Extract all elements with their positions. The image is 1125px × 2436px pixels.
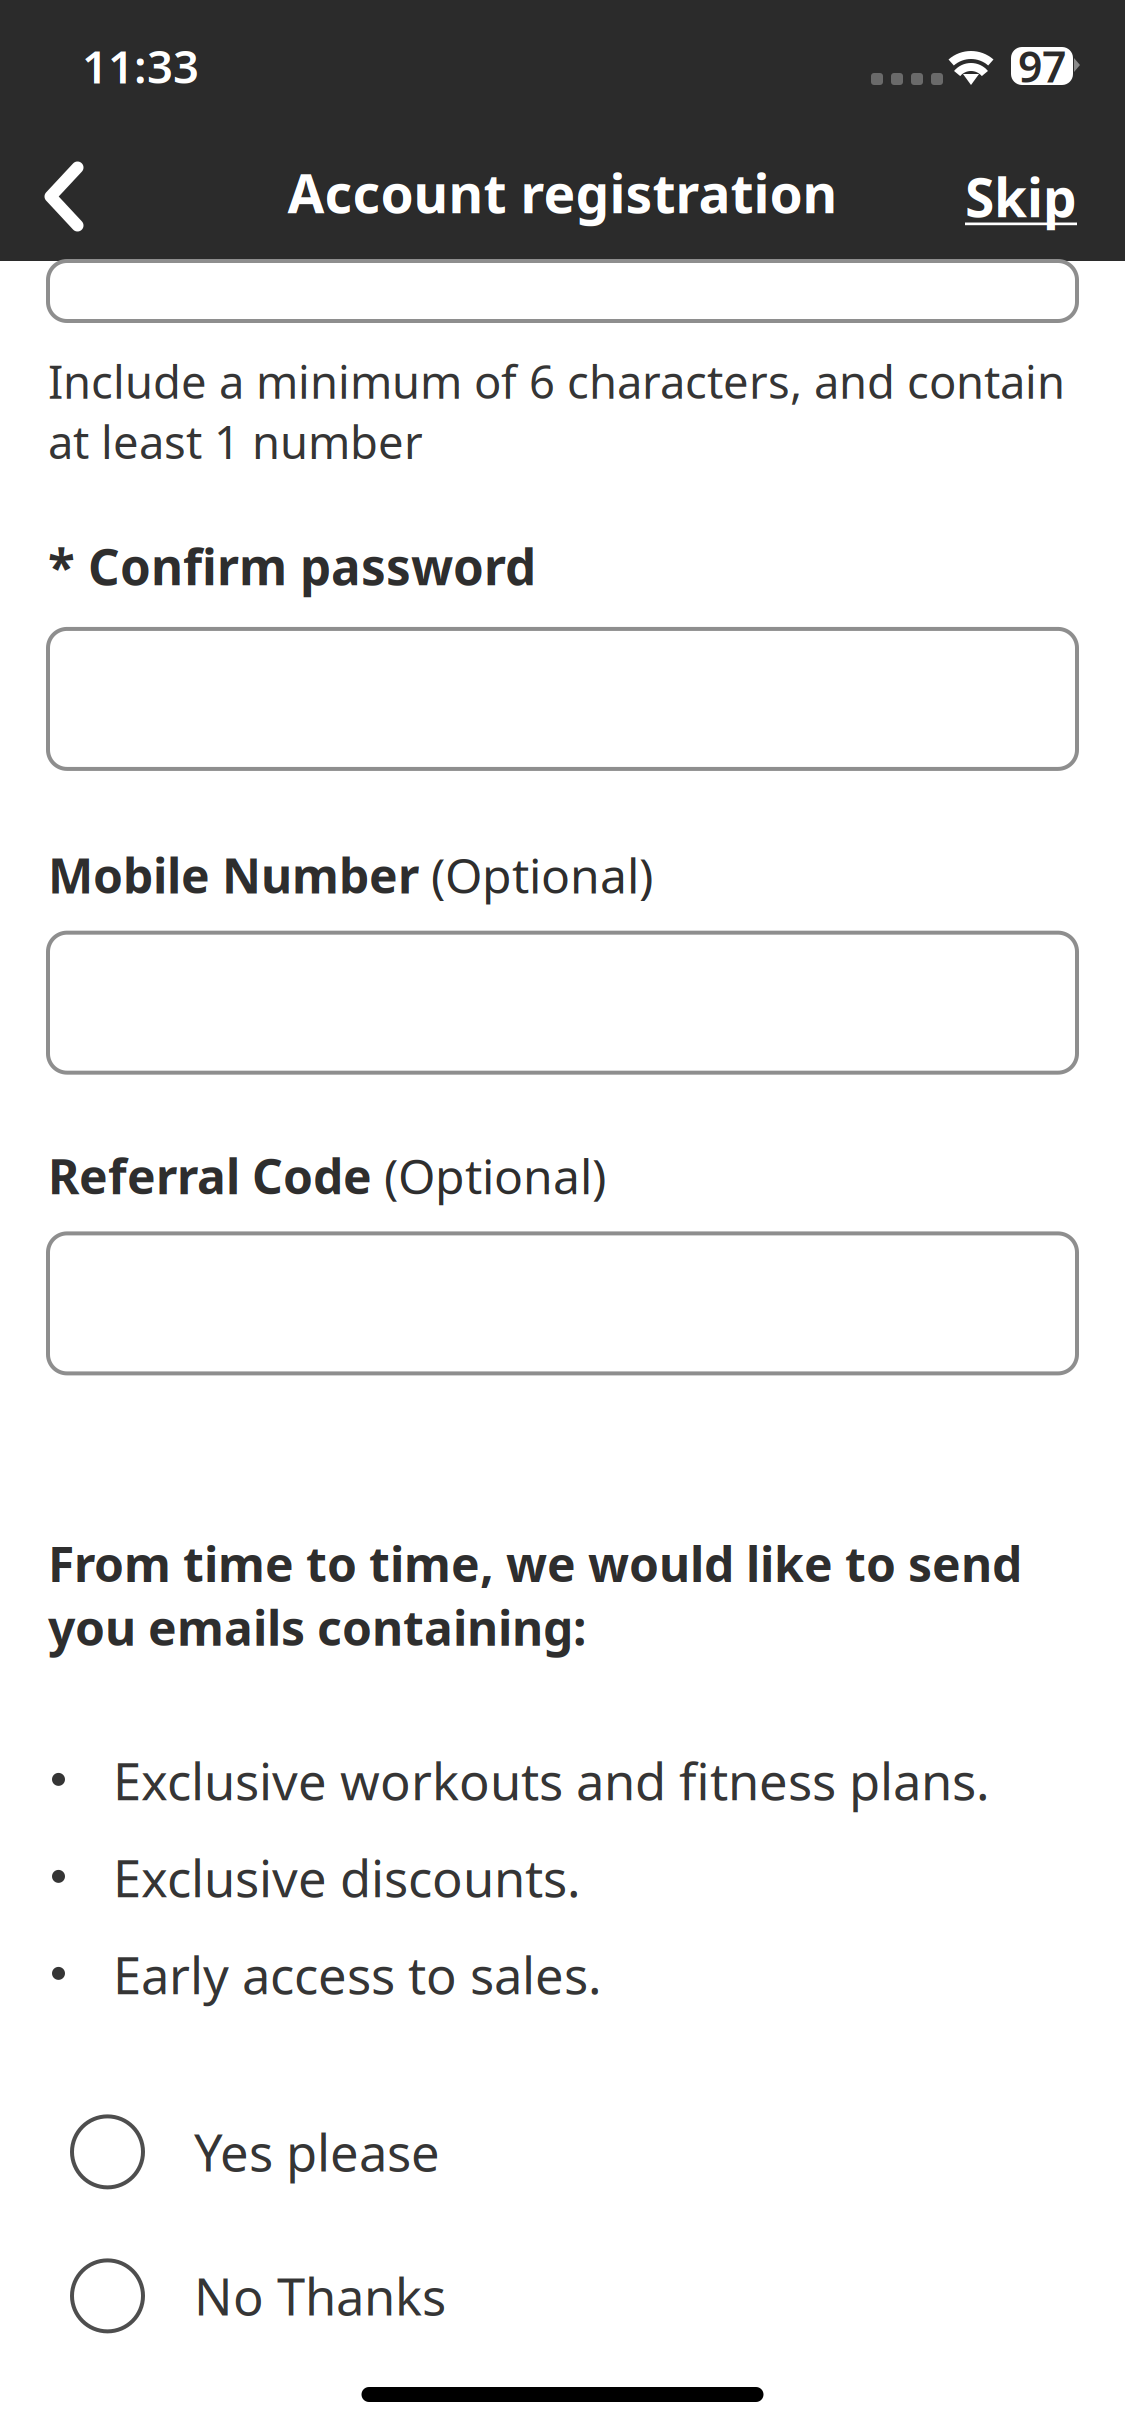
staticText: From time to time, we would like to send… xyxy=(48,1531,1022,1659)
button[interactable]: Confirm password xyxy=(0,629,1125,769)
staticText: No Thanks xyxy=(194,2262,446,2329)
button[interactable]: Mobile Number xyxy=(0,933,1125,1073)
staticText: Include a minimum of 6 characters, and c… xyxy=(48,351,1065,471)
button[interactable]: Yes please xyxy=(0,2080,1125,2224)
staticText: Exclusive discounts. xyxy=(113,1844,581,1911)
staticText: Referral Code xyxy=(48,1144,372,1207)
button[interactable]: Back xyxy=(6,132,102,261)
staticText: * Confirm password xyxy=(48,533,536,599)
staticText: 97 xyxy=(1018,38,1066,94)
staticText: (Optional) xyxy=(372,1144,606,1207)
button[interactable]: Referral Code xyxy=(0,1233,1125,1373)
staticText: Early access to sales. xyxy=(113,1941,602,2008)
button[interactable]: Skip xyxy=(965,132,1077,261)
staticText: Skip xyxy=(965,161,1077,232)
staticText: Mobile Number xyxy=(48,843,419,907)
button[interactable]: No Thanks xyxy=(0,2224,1125,2368)
staticText: Account registration xyxy=(287,157,837,228)
button[interactable]: Password xyxy=(0,261,1125,321)
staticText: Yes please xyxy=(194,2118,440,2185)
staticText: (Optional) xyxy=(419,843,653,907)
staticText: 11:33 xyxy=(82,36,199,96)
staticText: Exclusive workouts and fitness plans. xyxy=(113,1747,990,1814)
